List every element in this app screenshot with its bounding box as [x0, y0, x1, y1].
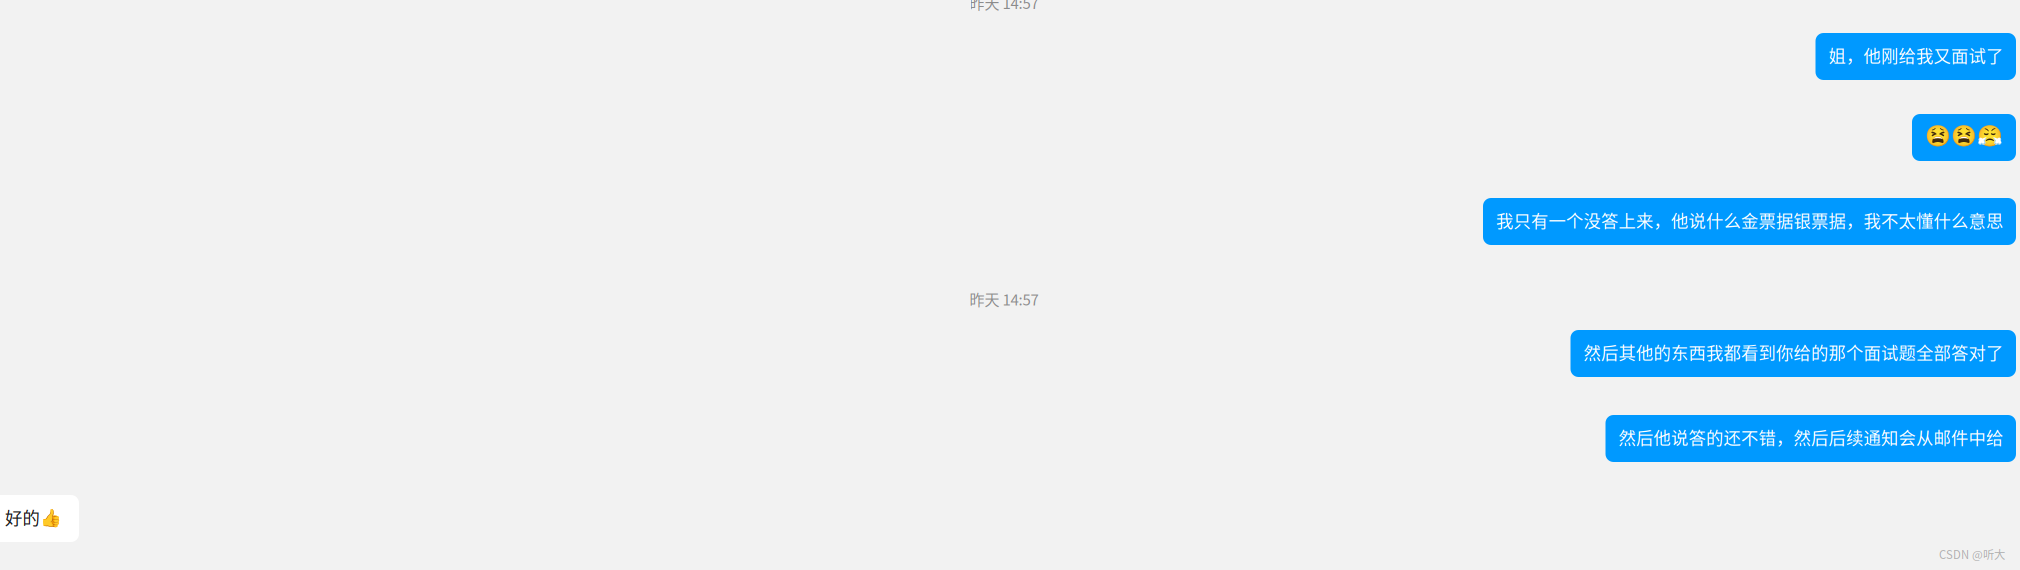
button[interactable]: 我只有一个没答上来，他说什么金票据银票据，我不太懂什么意思 — [1483, 198, 2016, 245]
staticText: 我只有一个没答上来，他说什么金票据银票据，我不太懂什么意思 — [1496, 207, 2003, 233]
button[interactable]: 好的👍 — [0, 495, 79, 542]
staticText: 😫😫😤 — [1925, 124, 2003, 148]
staticText: 然后他说答的还不错，然后后续通知会从邮件中给 — [1618, 424, 2003, 450]
staticText: CSDN @听大 — [1939, 546, 2005, 562]
staticText: 昨天 14:57 — [969, 288, 1038, 310]
staticText: 昨天 14:57 — [969, 0, 1038, 13]
button[interactable]: 😫😫😤 — [1912, 114, 2016, 161]
staticText: 然后其他的东西我都看到你给的那个面试题全部答对了 — [1583, 339, 2003, 365]
button[interactable]: 然后他说答的还不错，然后后续通知会从邮件中给 — [1605, 415, 2016, 462]
button[interactable]: 姐，他刚给我又面试了 — [1815, 33, 2016, 80]
staticText: 姐，他刚给我又面试了 — [1828, 42, 2003, 68]
button[interactable]: 然后其他的东西我都看到你给的那个面试题全部答对了 — [1570, 330, 2016, 377]
staticText: 好的👍 — [5, 504, 62, 530]
